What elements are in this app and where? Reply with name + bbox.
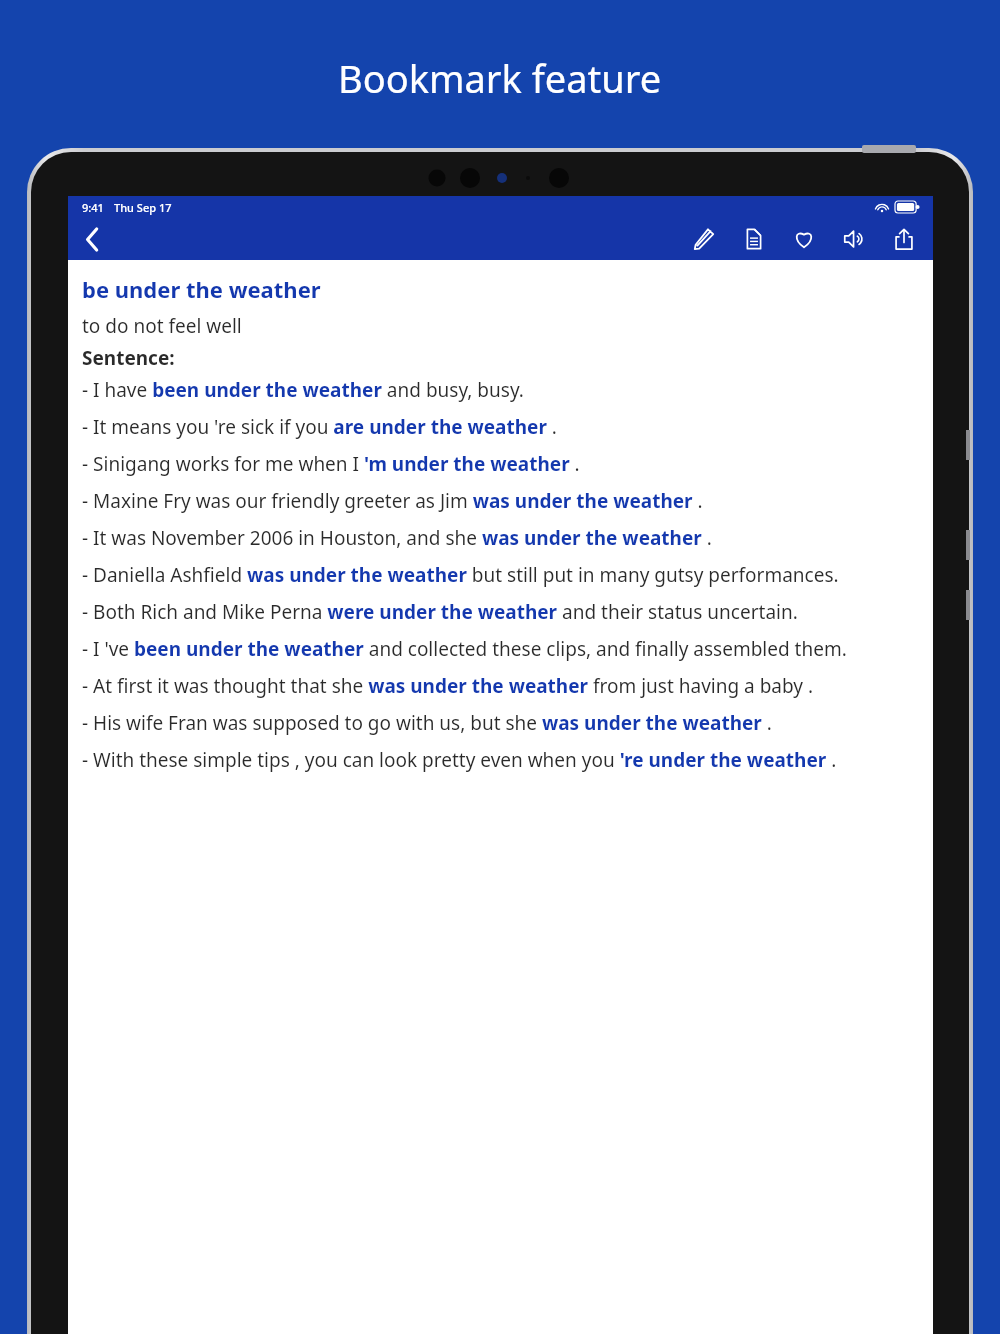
staticText: - It means you 're sick if you are under…	[82, 414, 557, 440]
staticText: - I 've been under the weather and colle…	[82, 636, 847, 662]
staticText: be under the weather	[82, 274, 321, 304]
staticText: - I have been under the weather and busy…	[82, 377, 524, 403]
button[interactable]: Share	[887, 222, 921, 256]
staticText: Bookmark feature	[338, 52, 662, 104]
button[interactable]: Document	[737, 222, 771, 256]
staticText: - His wife Fran was supposed to go with …	[82, 710, 772, 736]
staticText: - Both Rich and Mike Perna were under th…	[82, 599, 798, 625]
button[interactable]: Speak	[837, 222, 871, 256]
button[interactable]: Edit	[687, 222, 721, 256]
staticText: Sentence:	[82, 345, 175, 371]
staticText: to do not feel well	[82, 313, 242, 339]
staticText: Thu Sep 17	[114, 200, 172, 215]
button[interactable]: Favorite	[787, 222, 821, 256]
staticText: - Daniella Ashfield was under the weathe…	[82, 562, 839, 588]
staticText: - With these simple tips , you can look …	[82, 747, 837, 773]
staticText: 9:41	[82, 200, 104, 215]
staticText: - Maxine Fry was our friendly greeter as…	[82, 488, 703, 514]
button[interactable]: Back	[74, 221, 110, 257]
staticText: - Sinigang works for me when I 'm under …	[82, 451, 580, 477]
staticText: - At first it was thought that she was u…	[82, 673, 814, 699]
staticText: - It was November 2006 in Houston, and s…	[82, 525, 712, 551]
